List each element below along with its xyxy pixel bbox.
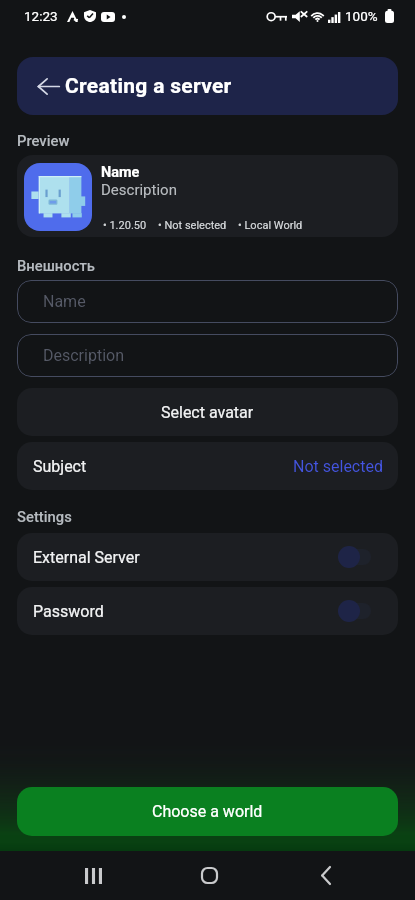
staticText: Creating a server [65,74,232,99]
staticText: Not selected [293,457,383,476]
button[interactable]: Recent apps [68,851,118,900]
button[interactable]: Back [300,851,350,900]
staticText: Description [101,181,177,199]
staticText: Name [101,164,140,181]
button[interactable]: Back [17,57,398,115]
staticText: Select avatar [161,403,254,422]
staticText: • 1.20.50 [103,219,147,232]
button[interactable]: Subject [17,442,398,490]
staticText: Choose a world [152,802,263,821]
staticText: Password [33,602,104,621]
button[interactable]: External Server [17,533,398,581]
staticText: Name [43,292,86,311]
button[interactable]: Choose a world [17,787,398,836]
staticText: Subject [33,457,87,476]
button[interactable]: Home [184,851,234,900]
other: Back [34,72,62,100]
staticText: • Local World [238,219,303,232]
button[interactable]: Description [17,334,398,377]
staticText: 100% [345,8,378,24]
button[interactable]: Toggle External Server [338,544,371,570]
staticText: 12:23 [24,8,58,24]
staticText: Внешность [17,257,95,274]
button[interactable]: Toggle Password [338,598,371,624]
staticText: Settings [17,508,72,525]
button[interactable]: Name [17,155,398,237]
staticText: External Server [33,548,140,567]
button[interactable]: Select avatar [17,388,398,436]
staticText: Description [43,346,124,365]
staticText: Preview [17,132,70,149]
button[interactable]: Name [17,280,398,323]
button[interactable]: Password [17,587,398,635]
staticText: • Not selected [158,219,227,232]
